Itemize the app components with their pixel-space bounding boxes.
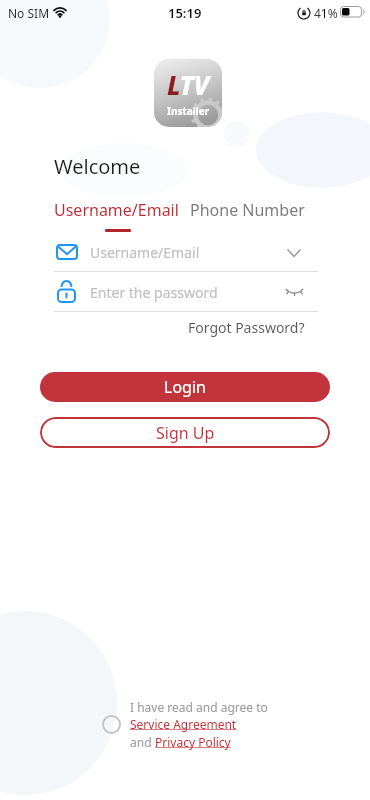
- staticText: Username/Email: [90, 243, 200, 262]
- staticText: Enter the password: [90, 283, 218, 302]
- staticText: LTV: [167, 67, 210, 102]
- staticText: Service Agreement: [130, 716, 237, 732]
- staticText: Forgot Password?: [188, 318, 305, 337]
- staticText: Sign Up: [156, 422, 215, 444]
- button[interactable]: Phone Number: [190, 199, 305, 221]
- staticText: Username/Email: [54, 199, 179, 221]
- staticText: Login: [164, 376, 206, 398]
- staticText: Privacy Policy: [155, 734, 231, 750]
- staticText: Welcome: [54, 153, 141, 180]
- button[interactable]: Service Agreement: [130, 716, 237, 732]
- staticText: No SIM: [8, 5, 50, 21]
- button[interactable]: Username/Email: [54, 199, 179, 221]
- button[interactable]: Privacy Policy: [155, 734, 231, 750]
- button[interactable]: Username/Email: [90, 243, 200, 262]
- button[interactable]: Enter the password: [90, 283, 218, 302]
- button[interactable]: Login: [40, 372, 330, 402]
- button[interactable]: [287, 249, 301, 258]
- staticText: and: [130, 734, 155, 750]
- staticText: I have read and agree to: [130, 699, 268, 715]
- staticText: Installer: [167, 104, 210, 118]
- button[interactable]: [285, 286, 304, 300]
- button[interactable]: [102, 715, 121, 734]
- staticText: 15:19: [168, 4, 202, 22]
- staticText: Phone Number: [190, 199, 305, 221]
- staticText: 41%: [314, 5, 338, 21]
- button[interactable]: Sign Up: [40, 417, 330, 448]
- button[interactable]: Forgot Password?: [188, 318, 305, 337]
